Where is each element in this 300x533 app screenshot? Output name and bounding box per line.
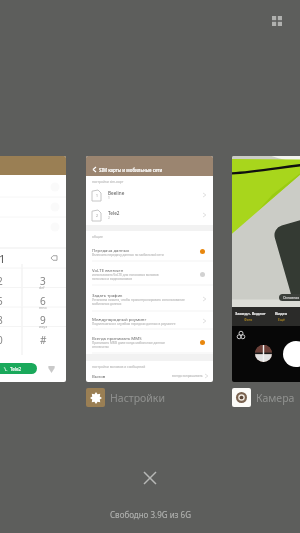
staticText: Вызов	[92, 373, 106, 379]
staticText: 1	[96, 193, 98, 198]
button[interactable]: Задать трафик	[86, 286, 213, 312]
button[interactable]: Передача данных	[86, 241, 213, 262]
staticText: настройки вызовов и сообщений	[92, 364, 146, 368]
button[interactable]: Всегда принимать MMS	[86, 330, 213, 354]
button[interactable]: Международный роуминг	[86, 312, 213, 330]
staticText: wxyz	[39, 324, 48, 329]
staticText: использовать VoLTE для голосовых вызовов…	[92, 273, 159, 281]
staticText: mno	[39, 305, 47, 310]
staticText: всегда запрашивать	[172, 374, 203, 378]
button[interactable]: Камера	[232, 388, 295, 407]
staticText: Видео	[275, 311, 288, 316]
staticText: Настройки	[110, 391, 165, 405]
staticText: Свободно 3.9G из 6G	[110, 509, 191, 520]
button[interactable]: Настройки	[86, 388, 165, 407]
staticText: Ещё	[278, 317, 285, 322]
button[interactable]: 1	[86, 185, 213, 205]
button[interactable]: Tele2	[0, 363, 37, 374]
button[interactable]: All apps	[265, 9, 289, 33]
button[interactable]: SIM карты и мобильные сети	[86, 156, 213, 382]
button[interactable]: Close all	[138, 466, 162, 490]
staticText: SIM карты и мобильные сети	[99, 167, 163, 173]
staticText: Tele2	[10, 366, 21, 372]
staticText: Tele2	[108, 210, 120, 216]
staticText: Установка лимита, чтобы проконтролироват…	[92, 298, 185, 306]
button[interactable]: VoLTE включен	[86, 262, 213, 286]
button[interactable]: 2	[86, 205, 213, 225]
button[interactable]: Основная камера	[232, 156, 300, 382]
staticText: 1	[0, 251, 6, 266]
staticText: настройки sim-карт	[92, 179, 124, 183]
button[interactable]: Gallery	[255, 345, 272, 362]
staticText: 2	[108, 216, 110, 220]
staticText: 2	[96, 213, 98, 218]
staticText: Задать трафик	[92, 292, 123, 298]
staticText: Принимать MMS даже когда мобильные данны…	[92, 341, 166, 349]
staticText: Подключаться к службам передачи данных в…	[92, 322, 176, 326]
button[interactable]: 1	[0, 156, 66, 382]
staticText: Международный роуминг	[92, 316, 147, 322]
staticText: 6	[40, 294, 46, 308]
staticText: Передача данных	[92, 247, 130, 253]
staticText: Beeline	[108, 190, 125, 196]
staticText: 3	[40, 274, 46, 288]
staticText: Фото	[244, 317, 253, 322]
staticText: 5	[0, 294, 3, 308]
staticText: #	[40, 333, 47, 347]
staticText: def	[39, 285, 45, 290]
staticText: общие	[92, 234, 103, 238]
button[interactable]: Shutter	[283, 341, 300, 367]
staticText: Камера	[256, 391, 295, 405]
staticText: Всегда принимать MMS	[92, 335, 142, 341]
staticText: 2	[0, 274, 3, 288]
staticText: 1	[108, 196, 110, 200]
staticText: Замедл. Видеот	[235, 311, 266, 316]
button[interactable]: Keypad	[45, 363, 57, 375]
staticText: Включить передачу данных по мобильной се…	[92, 253, 164, 257]
staticText: 9	[40, 313, 46, 327]
button[interactable]: Backspace	[48, 252, 60, 264]
staticText: VoLTE включен	[92, 267, 124, 273]
staticText: 0	[0, 333, 3, 347]
staticText: 8	[0, 313, 3, 327]
button[interactable]: Filters	[235, 329, 246, 340]
staticText: Основная камера	[283, 295, 300, 300]
